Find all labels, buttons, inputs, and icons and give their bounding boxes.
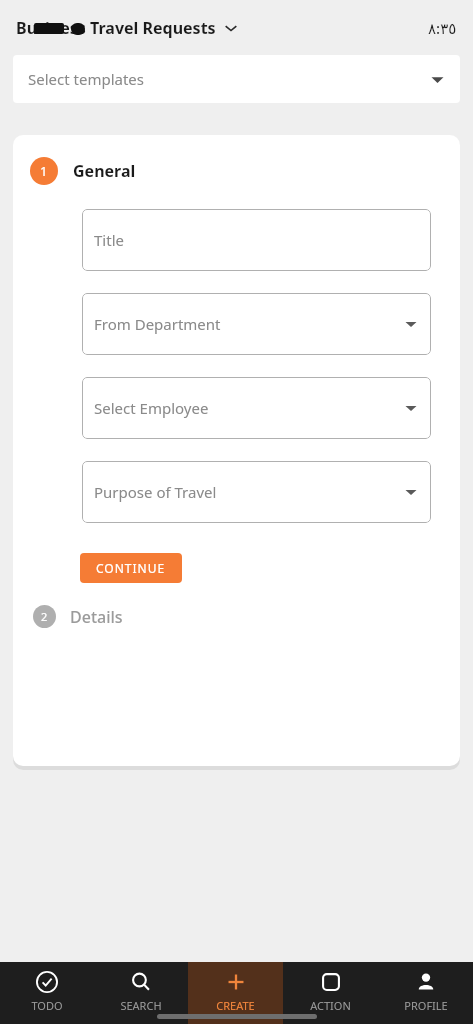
button[interactable]: PROFILE (378, 962, 473, 1024)
button[interactable]: From Department (82, 293, 431, 355)
button[interactable]: CONTINUE (80, 553, 182, 583)
staticText: SEARCH (120, 998, 162, 1013)
button[interactable]: Select templates (13, 55, 460, 103)
button[interactable]: Business Travel Requests (16, 17, 238, 39)
staticText: General (73, 160, 136, 182)
staticText: Purpose of Travel (94, 482, 217, 502)
button[interactable]: 1 (30, 157, 460, 185)
staticText: ACTION (310, 998, 351, 1013)
staticText: Business Travel Requests (16, 17, 216, 39)
staticText: 2 (41, 609, 48, 624)
button[interactable]: CREATE (188, 962, 283, 1024)
staticText: Title (94, 230, 124, 250)
button[interactable]: SEARCH (94, 962, 188, 1024)
button[interactable]: Select Employee (82, 377, 431, 439)
staticText: TODO (31, 998, 63, 1013)
staticText: PROFILE (404, 998, 448, 1013)
staticText: Details (70, 606, 123, 628)
button[interactable]: Title (82, 209, 431, 271)
staticText: Select templates (28, 69, 145, 89)
staticText: CONTINUE (96, 560, 166, 576)
staticText: ٨:٣٥ (428, 18, 457, 38)
staticText: CREATE (216, 998, 255, 1013)
button[interactable]: ACTION (283, 962, 378, 1024)
staticText: From Department (94, 314, 221, 334)
staticText: 1 (40, 162, 48, 180)
button[interactable]: TODO (0, 962, 94, 1024)
button[interactable]: 2 (33, 605, 460, 628)
button[interactable]: Purpose of Travel (82, 461, 431, 523)
staticText: Select Employee (94, 398, 209, 418)
